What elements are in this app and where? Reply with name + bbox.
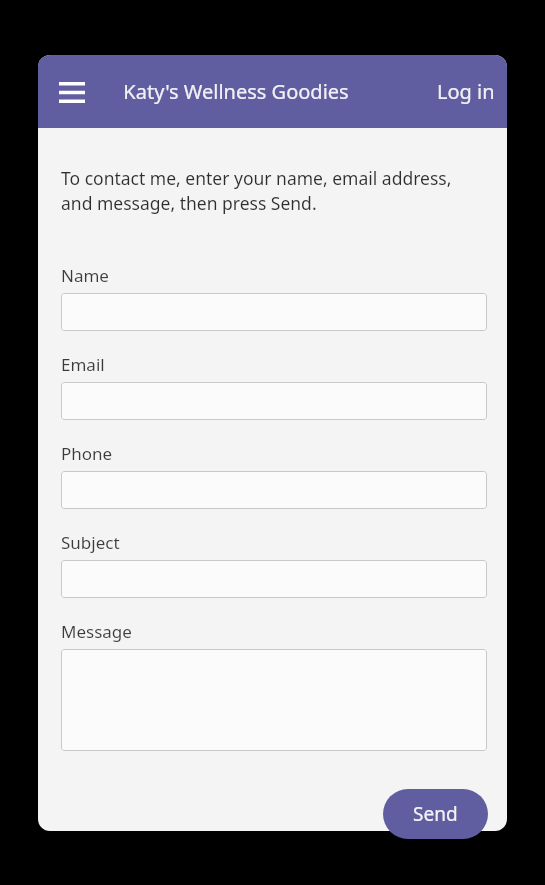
staticText: Email: [61, 353, 105, 376]
staticText: Name: [61, 264, 109, 287]
staticText: Message: [61, 620, 132, 643]
button[interactable]: [61, 293, 487, 331]
button[interactable]: Log in: [425, 70, 507, 113]
staticText: Subject: [61, 531, 120, 554]
button[interactable]: [61, 649, 487, 751]
staticText: Phone: [61, 442, 113, 465]
button[interactable]: [61, 471, 487, 509]
staticText: Katy's Wellness Goodies: [123, 78, 349, 105]
button[interactable]: [61, 382, 487, 420]
button[interactable]: Send: [383, 789, 488, 839]
staticText: Log in: [437, 78, 495, 105]
staticText: To contact me, enter your name, email ad…: [61, 166, 487, 216]
button[interactable]: [61, 560, 487, 598]
staticText: Send: [413, 801, 458, 827]
button[interactable]: Open navigation menu: [52, 72, 92, 112]
